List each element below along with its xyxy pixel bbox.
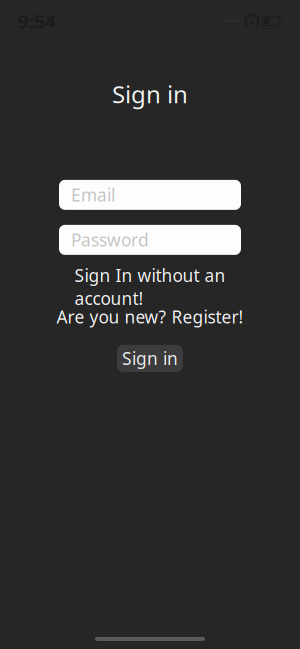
button[interactable]: Sign in	[117, 345, 183, 372]
staticText: Are you new? Register!	[56, 305, 243, 328]
staticText: Password	[71, 228, 149, 251]
staticText: Sign in	[122, 347, 178, 370]
staticText: Sign in	[112, 78, 188, 110]
button[interactable]: Are you new? Register!	[50, 307, 250, 327]
staticText: Sign In without an account!	[74, 264, 225, 310]
staticText: 9:54	[18, 9, 56, 33]
button[interactable]: Sign In without an account!	[50, 277, 250, 297]
staticText: Email	[71, 183, 115, 206]
